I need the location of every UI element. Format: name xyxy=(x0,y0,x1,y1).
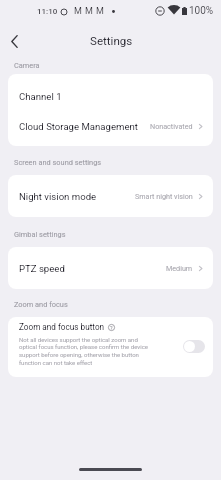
staticText: Gimbal settings xyxy=(14,230,66,239)
button[interactable]: PTZ speed xyxy=(8,247,213,289)
button[interactable]: Cloud Storage Management xyxy=(8,111,213,141)
button[interactable]: Zoom and focus button xyxy=(8,317,213,377)
staticText: 11:10 xyxy=(37,7,58,16)
staticText: Screen and sound settings xyxy=(14,158,102,167)
staticText: ? xyxy=(110,325,113,331)
button[interactable]: Night vision mode xyxy=(8,175,213,217)
staticText: M xyxy=(96,6,104,17)
staticText: M xyxy=(74,6,82,17)
staticText: Smart night vision xyxy=(135,192,193,200)
staticText: Cloud Storage Management xyxy=(19,121,138,132)
staticText: PTZ speed xyxy=(19,263,65,274)
button[interactable]: Zoom and focus button toggle xyxy=(183,340,205,353)
button[interactable]: Channel 1 xyxy=(8,81,213,111)
staticText: Zoom and focus xyxy=(14,300,68,309)
staticText: 100% xyxy=(189,5,214,17)
staticText: Medium xyxy=(166,264,193,272)
staticText: Night vision mode xyxy=(19,191,97,202)
staticText: Channel 1 xyxy=(19,91,62,102)
staticText: Not all devices support the optical zoom… xyxy=(19,336,149,366)
staticText: Settings xyxy=(90,34,133,48)
button[interactable]: Back xyxy=(1,28,27,54)
staticText: Nonactivated xyxy=(150,122,193,130)
staticText: M xyxy=(85,6,93,17)
staticText: Camera xyxy=(14,61,40,70)
staticText: Zoom and focus button xyxy=(19,322,105,332)
